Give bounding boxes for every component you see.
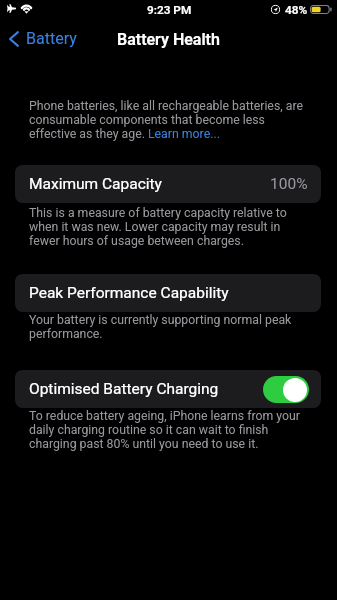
button[interactable]: Optimised Battery Charging (263, 376, 309, 403)
button[interactable]: Maximum Capacity (15, 165, 321, 203)
staticText: Battery Health (117, 30, 220, 49)
staticText: Your battery is currently supporting nor… (29, 313, 329, 341)
staticText: Maximum Capacity (29, 175, 162, 193)
staticText: 100% (270, 175, 308, 193)
staticText: Peak Performance Capability (29, 284, 229, 302)
staticText: Phone batteries, like all rechargeable b… (29, 99, 329, 141)
button[interactable]: Optimised Battery Charging (15, 370, 321, 408)
staticText: 48% (285, 3, 308, 17)
staticText: 9:23 PM (147, 3, 192, 17)
staticText: To reduce battery ageing, iPhone learns … (29, 409, 329, 451)
staticText: Battery (26, 29, 77, 48)
button[interactable]: Peak Performance Capability (15, 274, 321, 312)
button[interactable]: Battery (4, 25, 82, 52)
staticText: This is a measure of battery capacity re… (29, 206, 329, 248)
staticText: Optimised Battery Charging (29, 380, 219, 398)
